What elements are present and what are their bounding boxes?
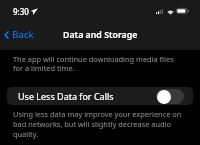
staticText: Back (12, 28, 34, 41)
staticText: Using less data may improve your experie… (13, 109, 182, 139)
staticText: Use Less Data for Calls (18, 90, 114, 102)
button[interactable]: Use Less Data for Calls (7, 87, 193, 105)
button[interactable]: Back (3, 25, 36, 44)
staticText: 9:30 (13, 6, 29, 17)
staticText: Data and Storage (63, 29, 138, 41)
button[interactable]: Use Less Data for Calls toggle (156, 89, 184, 104)
staticText: The app will continue downloading media … (13, 54, 180, 73)
